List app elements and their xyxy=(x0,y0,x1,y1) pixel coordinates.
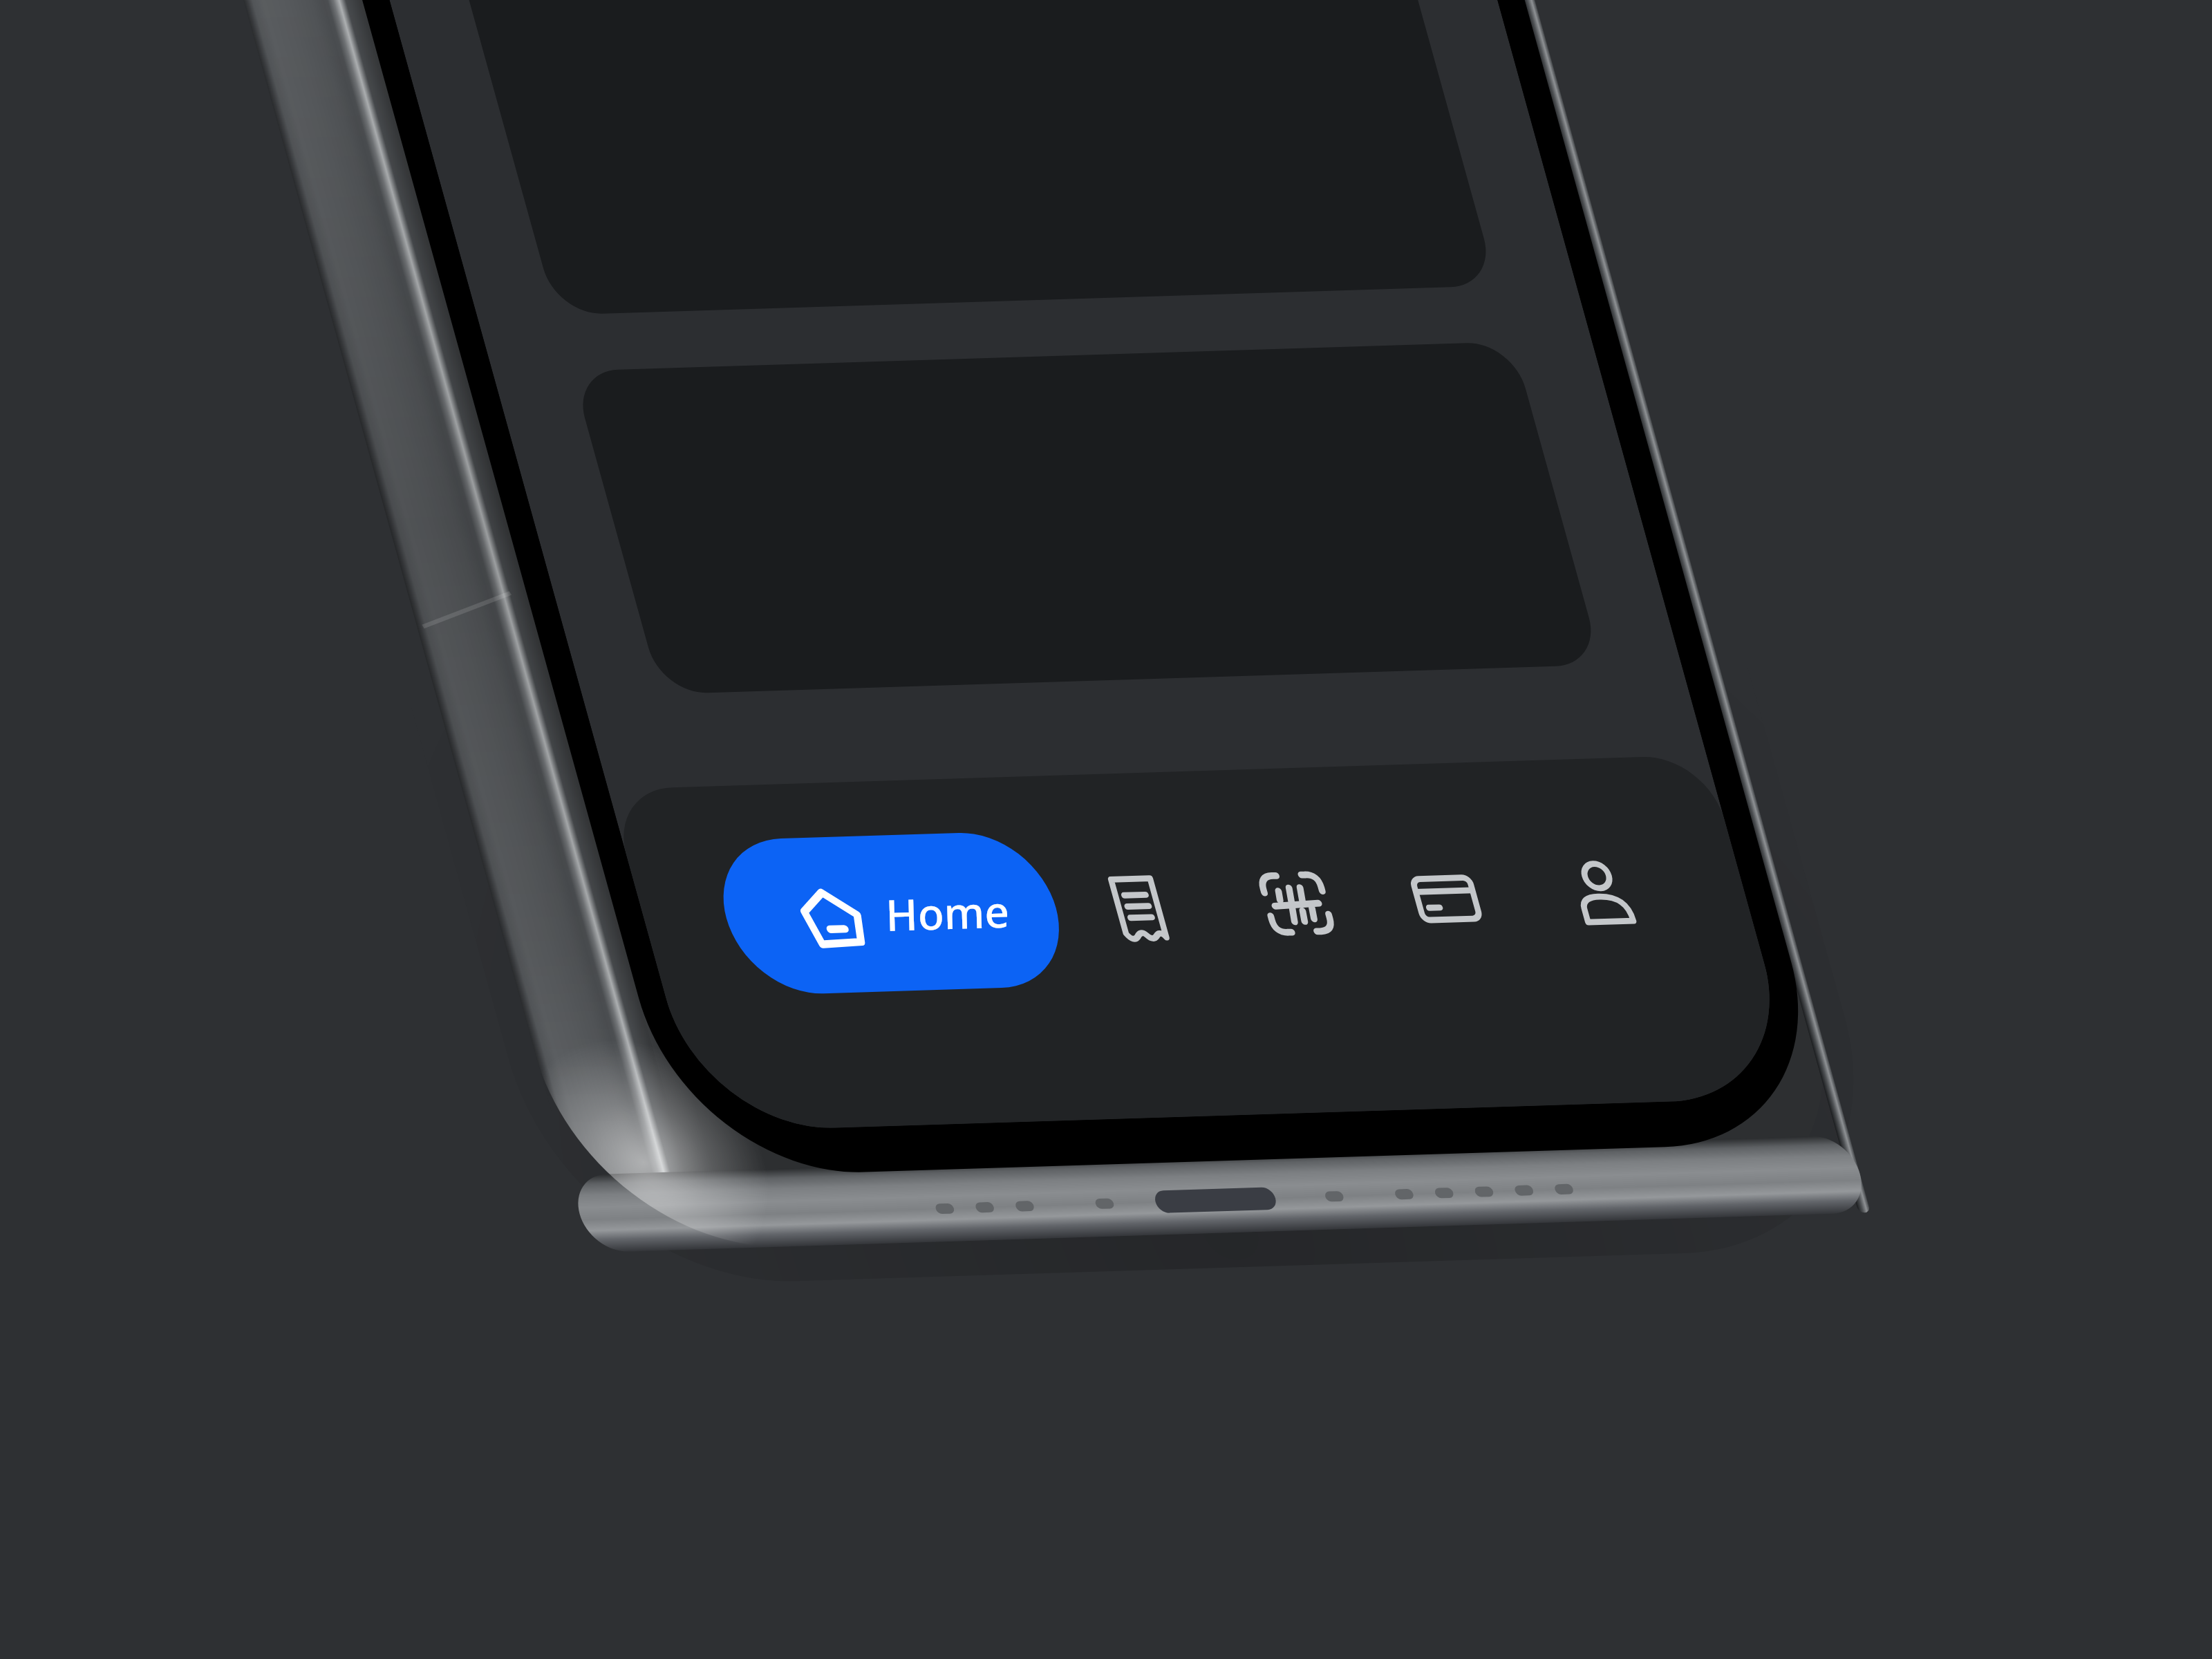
button[interactable]: Scan xyxy=(1226,768,1293,1110)
button[interactable] xyxy=(705,831,1035,986)
button[interactable]: Receipts xyxy=(1067,773,1135,1115)
staticText: Home xyxy=(885,882,1010,944)
button[interactable]: Cards xyxy=(1375,763,1443,1105)
button[interactable]: Profile xyxy=(1532,758,1600,1100)
